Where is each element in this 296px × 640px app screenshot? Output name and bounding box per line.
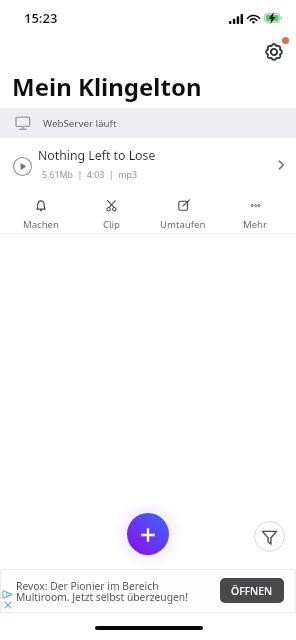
button[interactable]: Open details	[267, 151, 295, 179]
staticText: 15:23	[24, 9, 58, 27]
staticText: Mehr	[243, 218, 268, 231]
button[interactable]: Umtaufen	[147, 194, 219, 232]
staticText: Revox: Der Pionier im Bereich Multiroom.…	[16, 579, 188, 604]
button[interactable]: ÖFFNEN	[220, 578, 284, 603]
staticText: Clip	[103, 218, 120, 231]
button[interactable]: Clip	[76, 194, 147, 232]
staticText: ÖFFNEN	[231, 584, 273, 598]
button[interactable]: Add	[127, 513, 169, 555]
button[interactable]: Machen	[5, 194, 76, 232]
staticText: 5.61Mb | 4:03 | mp3	[42, 169, 137, 181]
button[interactable]: Filter	[254, 521, 285, 552]
staticText: Machen	[23, 218, 59, 231]
staticText: WebServer läuft	[43, 117, 117, 130]
button[interactable]: WebServer läuft	[0, 108, 296, 138]
staticText: Umtaufen	[160, 218, 206, 231]
button[interactable]: Mehr	[219, 194, 291, 232]
button[interactable]: Nothing Left to Lose	[0, 140, 296, 188]
staticText: Mein Klingelton	[12, 70, 202, 103]
staticText: Nothing Left to Lose	[38, 147, 156, 164]
button[interactable]: Settings	[263, 40, 287, 64]
